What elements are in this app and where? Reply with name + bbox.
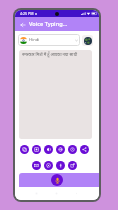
button[interactable]: whatsapp <box>44 161 53 170</box>
button[interactable]: selectall <box>32 145 41 154</box>
button[interactable]: speaker <box>44 145 53 154</box>
button[interactable]: Back <box>17 19 28 30</box>
button[interactable]: Hindi <box>18 34 80 46</box>
staticText: 4:25 PM <box>20 11 34 16</box>
button[interactable]: mail <box>32 161 41 170</box>
button[interactable]: translate <box>56 145 65 154</box>
button[interactable]: more <box>68 161 77 170</box>
button[interactable]: Microphone <box>51 174 63 186</box>
button[interactable]: share <box>80 145 89 154</box>
button[interactable]: copy <box>20 145 29 154</box>
button[interactable]: नमस्कार मित्रों मैं हूँ आपका नया साथी <box>19 50 92 139</box>
button[interactable]: Translate <box>82 35 93 46</box>
staticText: Hindi <box>29 37 40 43</box>
button[interactable]: history <box>68 145 77 154</box>
button[interactable]: fb <box>56 161 65 170</box>
staticText: नमस्कार मित्रों मैं हूँ आपका नया साथी <box>22 52 78 58</box>
staticText: Voice Typing... <box>29 20 68 28</box>
